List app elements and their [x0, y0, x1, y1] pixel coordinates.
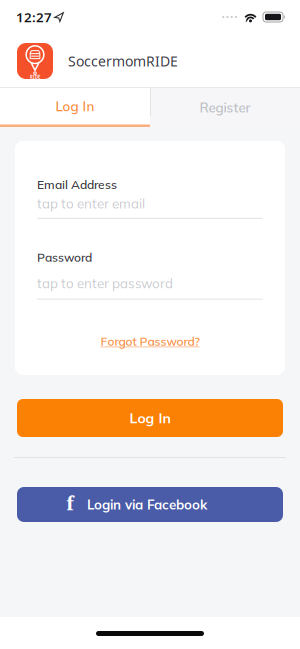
- button[interactable]: Register: [150, 88, 300, 127]
- staticText: RIDE: [30, 74, 40, 80]
- button[interactable]: Log In: [0, 88, 150, 127]
- staticText: tap to enter email: [37, 195, 145, 212]
- staticText: Log In: [55, 98, 94, 115]
- button[interactable]: RIDE: [0, 28, 300, 87]
- staticText: Log In: [129, 409, 170, 427]
- staticText: SoccermomRIDE: [68, 51, 178, 71]
- staticText: Register: [199, 99, 250, 116]
- staticText: 12:27: [16, 8, 52, 26]
- staticText: f: [66, 492, 74, 517]
- staticText: Password: [37, 250, 92, 265]
- button[interactable]: tap to enter email: [37, 192, 263, 219]
- button[interactable]: tap to enter password: [37, 265, 263, 300]
- button[interactable]: f: [17, 487, 283, 522]
- staticText: Email Address: [37, 177, 117, 192]
- staticText: Login via Facebook: [87, 496, 207, 513]
- button[interactable]: Log In: [17, 399, 283, 437]
- staticText: tap to enter password: [37, 275, 173, 292]
- staticText: Forgot Password?: [100, 334, 199, 349]
- button[interactable]: Forgot Password?: [100, 334, 199, 349]
